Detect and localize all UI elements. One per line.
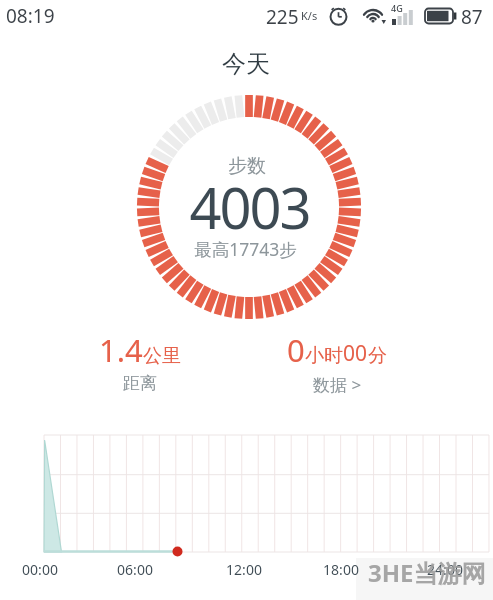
- staticText: 小时: [305, 344, 343, 368]
- staticText: 12:00: [226, 560, 262, 579]
- staticText: 公里: [143, 344, 181, 368]
- staticText: 18:00: [323, 560, 359, 579]
- staticText: 步数: [228, 154, 266, 178]
- staticText: 距离: [123, 373, 157, 394]
- staticText: 06:00: [117, 560, 153, 579]
- staticText: 4G: [391, 2, 403, 14]
- staticText: 00: [343, 339, 368, 368]
- staticText: 分: [368, 344, 387, 368]
- staticText: 3HE当游网: [368, 556, 486, 589]
- staticText: 1.4: [99, 329, 143, 371]
- staticText: 24:00: [427, 560, 463, 579]
- staticText: 00:00: [22, 560, 58, 579]
- staticText: 08:19: [6, 3, 55, 29]
- button[interactable]: 1.4: [40, 329, 240, 394]
- staticText: 4003: [189, 169, 310, 245]
- button[interactable]: 0: [237, 329, 437, 396]
- staticText: 今天: [222, 49, 270, 79]
- staticText: K/s: [301, 8, 318, 23]
- staticText: 225: [266, 4, 299, 30]
- staticText: 0: [287, 329, 305, 371]
- staticText: 87: [461, 4, 483, 30]
- staticText: 最高17743步: [194, 237, 297, 261]
- staticText: 数据 >: [313, 373, 362, 396]
